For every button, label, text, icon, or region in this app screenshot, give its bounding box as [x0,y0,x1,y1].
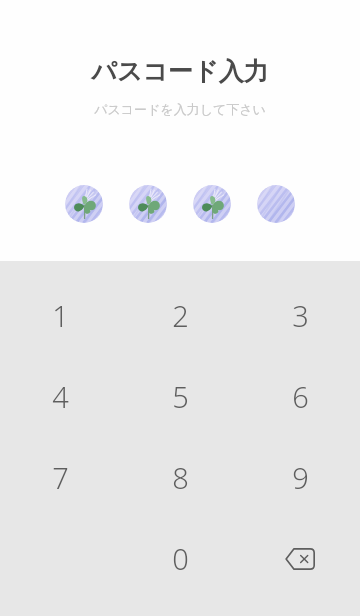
staticText: 6 [292,377,309,416]
button[interactable]: 5 [120,356,240,437]
button[interactable]: Backspace [240,518,360,599]
button[interactable]: 0 [120,518,240,599]
staticText: 1 [52,296,69,335]
staticText: 3 [292,296,309,335]
staticText: 4 [52,377,69,416]
button[interactable]: 2 [120,275,240,356]
staticText: 2 [172,296,189,335]
button[interactable]: 3 [240,275,360,356]
staticText: 9 [292,458,309,497]
button[interactable]: 9 [240,437,360,518]
staticText: 5 [172,377,189,416]
staticText: パスコードを入力して下さい [94,101,266,117]
staticText: 0 [172,539,189,578]
staticText: パスコード入力 [91,56,269,87]
button[interactable]: 4 [0,356,120,437]
button[interactable]: 8 [120,437,240,518]
button[interactable]: 1 [0,275,120,356]
staticText: 8 [172,458,189,497]
button[interactable]: 7 [0,437,120,518]
button[interactable]: 6 [240,356,360,437]
staticText: 7 [52,458,69,497]
